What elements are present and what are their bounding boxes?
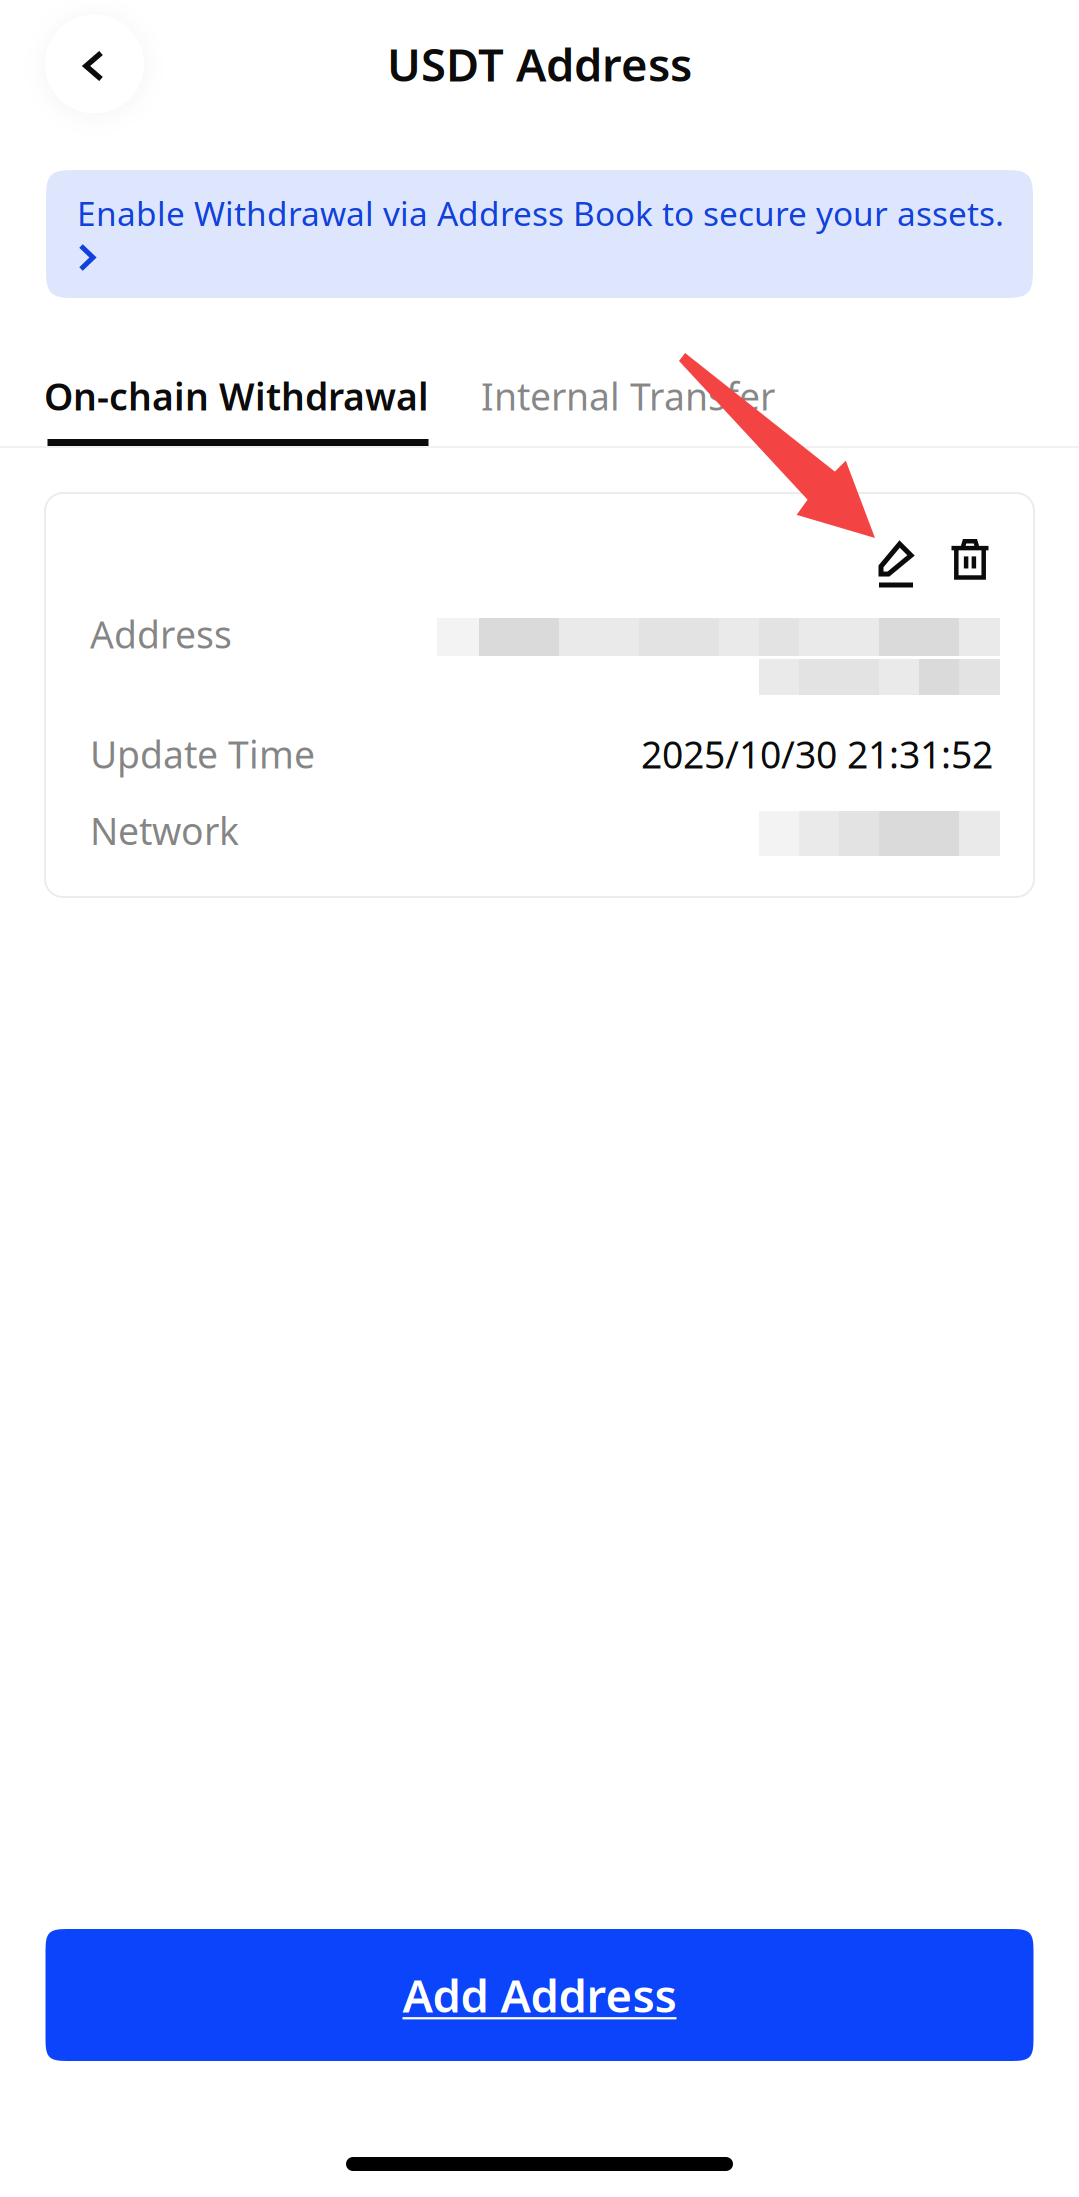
button[interactable]: Edit address [870, 540, 922, 596]
staticText: Add Address [402, 1965, 676, 2025]
button[interactable]: Back [45, 14, 144, 113]
staticText: Network [90, 806, 239, 855]
button[interactable]: Delete address [944, 540, 996, 596]
button[interactable]: Add Address [45, 1929, 1033, 2061]
staticText: 2025/10/30 21:31:52 [641, 729, 993, 779]
staticText: Enable Withdrawal via Address Book to se… [77, 191, 1004, 235]
button[interactable]: On-chain Withdrawal [44, 372, 432, 446]
staticText: USDT Address [387, 34, 692, 94]
staticText: Internal Transfer [481, 371, 775, 421]
button[interactable]: Enable Withdrawal via Address Book to se… [46, 170, 1033, 298]
staticText: Address [90, 609, 232, 659]
staticText: Update Time [90, 729, 315, 779]
staticText: On-chain Withdrawal [44, 371, 429, 421]
button[interactable]: Internal Transfer [481, 372, 781, 446]
